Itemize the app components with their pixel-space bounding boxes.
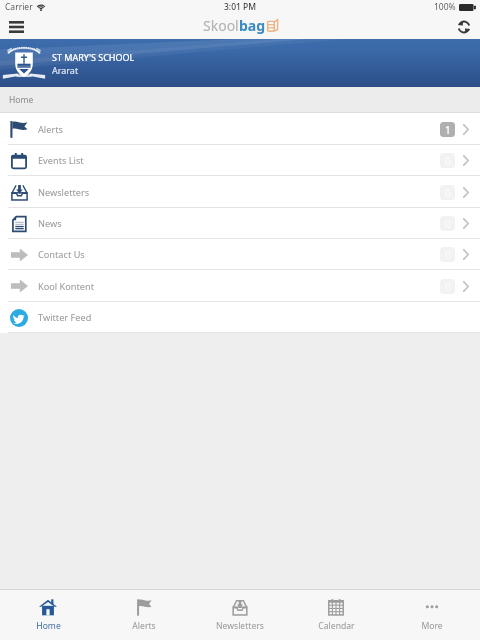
button[interactable]: Twitter Feed <box>0 302 480 333</box>
staticText: Newsletters <box>216 620 264 632</box>
staticText: ST MARY'S SCHOOL <box>52 51 135 63</box>
button[interactable]: News <box>0 208 480 239</box>
button[interactable]: More <box>384 590 480 640</box>
staticText: Contact Us <box>38 248 85 261</box>
staticText: Twitter Feed <box>38 311 92 324</box>
button[interactable]: Kool Kontent <box>0 270 480 302</box>
staticText: Alerts <box>132 620 156 632</box>
button[interactable]: Calendar <box>288 590 384 640</box>
staticText: Home <box>9 94 34 106</box>
button[interactable]: Newsletters <box>0 176 480 208</box>
button[interactable]: Contact Us <box>0 239 480 270</box>
staticText: Alerts <box>38 123 63 136</box>
staticText: 1 <box>445 123 451 137</box>
staticText: Home <box>36 620 61 632</box>
staticText: News <box>38 217 62 230</box>
staticText: 100% <box>434 1 456 13</box>
button[interactable]: Menu <box>0 14 32 39</box>
staticText: Carrier <box>5 1 33 13</box>
button[interactable]: Alerts <box>0 113 480 145</box>
staticText: Ararat <box>52 64 79 76</box>
staticText: bag <box>239 16 266 35</box>
staticText: Events List <box>38 154 84 167</box>
button[interactable]: Alerts <box>96 590 192 640</box>
staticText: Kool Kontent <box>38 280 94 293</box>
button[interactable]: Events List <box>0 145 480 176</box>
staticText: Calendar <box>318 620 355 632</box>
staticText: Newsletters <box>38 186 90 199</box>
button[interactable]: Home <box>0 590 96 640</box>
staticText: More <box>421 620 443 632</box>
staticText: Skool <box>203 16 239 35</box>
button[interactable]: Newsletters <box>192 590 288 640</box>
button[interactable]: Refresh <box>448 14 480 39</box>
staticText: 3:01 PM <box>224 1 257 13</box>
